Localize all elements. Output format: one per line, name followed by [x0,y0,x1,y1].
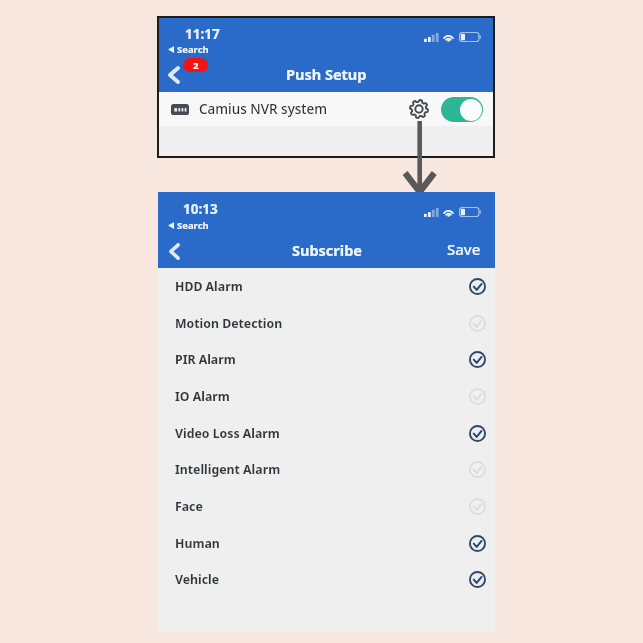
staticText: Vehicle [175,571,220,588]
staticText: Face [175,498,203,515]
button[interactable]: Back [161,237,187,265]
button[interactable]: Camius NVR system [157,92,495,126]
button[interactable]: Video Loss Alarm [158,415,495,452]
staticText: 10:13 [183,200,218,218]
button[interactable]: Save [441,233,487,265]
button[interactable]: HDD Alarm [158,268,495,305]
button[interactable]: PIR Alarm [158,341,495,378]
staticText: Motion Detection [175,315,283,332]
staticText: 11:17 [185,25,220,43]
staticText: 2 [193,59,199,72]
staticText: PIR Alarm [175,351,236,368]
button[interactable]: Motion Detection [158,305,495,342]
button[interactable]: Face [158,488,495,525]
staticText: Camius NVR system [199,100,328,118]
staticText: Search [177,43,209,56]
staticText: HDD Alarm [175,278,243,295]
button[interactable]: Back [160,61,188,89]
button[interactable]: Settings [406,96,432,122]
staticText: Push Setup [286,64,367,84]
button[interactable]: IO Alarm [158,378,495,415]
staticText: Search [177,219,209,232]
button[interactable]: Vehicle [158,561,495,598]
staticText: Human [175,535,220,552]
button[interactable] [441,97,483,122]
staticText: Intelligent Alarm [175,461,281,478]
staticText: Subscribe [292,240,362,260]
staticText: Video Loss Alarm [175,425,280,442]
staticText: Save [447,239,481,259]
button[interactable]: Intelligent Alarm [158,451,495,488]
staticText: IO Alarm [175,388,230,405]
button[interactable]: Human [158,525,495,562]
